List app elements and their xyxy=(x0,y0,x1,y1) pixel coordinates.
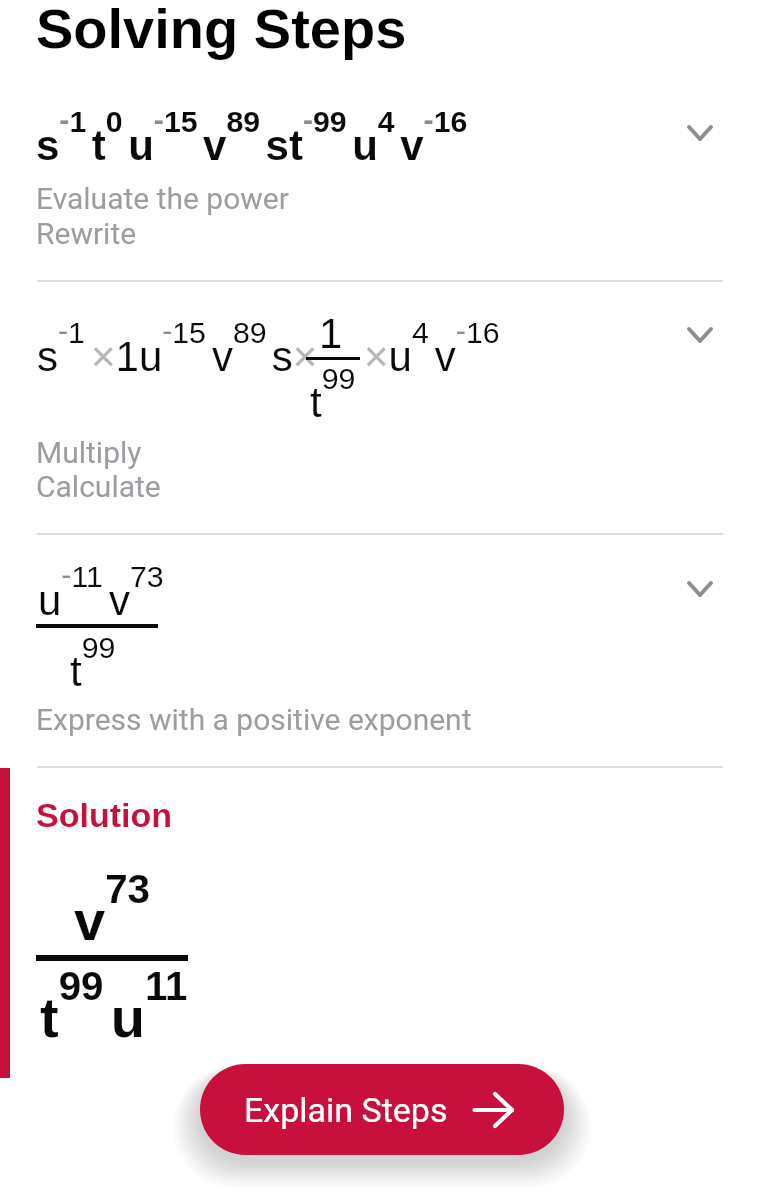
staticText: u-11 v73 xyxy=(38,558,164,624)
staticText: Rewrite xyxy=(36,216,137,251)
staticText: Solving Steps xyxy=(36,0,407,60)
button[interactable]: Expand step xyxy=(668,557,732,621)
staticText: t99 xyxy=(70,631,116,695)
staticText: Calculate xyxy=(36,469,161,504)
button[interactable]: Explain Steps xyxy=(200,1064,564,1155)
staticText: ×u4 v-16 xyxy=(364,314,500,380)
staticText: t99 u11 xyxy=(40,963,188,1049)
staticText: Solution xyxy=(36,796,172,834)
staticText: v73 xyxy=(74,866,150,952)
button[interactable]: Expand step xyxy=(668,101,732,165)
staticText: Express with a positive exponent xyxy=(36,702,472,737)
staticText: Explain Steps xyxy=(244,1090,448,1130)
staticText: Multiply xyxy=(36,435,142,470)
staticText: s-1 t0 u-15 v89 st-99 u4 v-16 xyxy=(36,103,468,169)
staticText: Evaluate the power xyxy=(36,181,289,216)
button[interactable]: Expand step xyxy=(668,303,732,367)
staticText: s-1 ×1u-15 v89 s× xyxy=(37,314,318,380)
staticText: 1 xyxy=(319,310,343,357)
staticText: t99 xyxy=(310,362,356,426)
